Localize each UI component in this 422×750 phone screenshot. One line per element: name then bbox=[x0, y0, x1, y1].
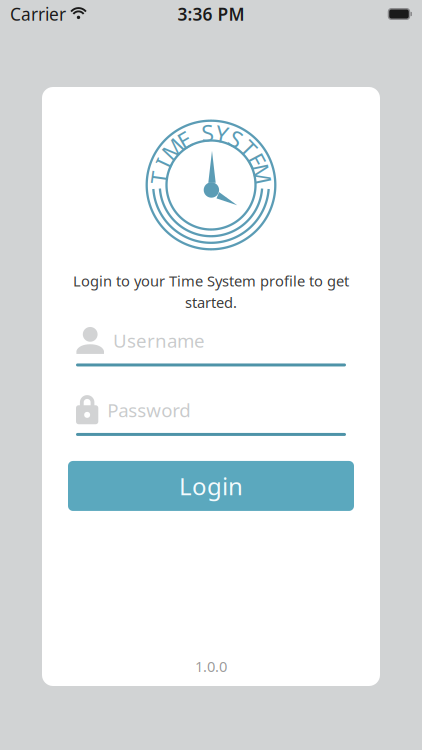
staticText: 1.0.0 bbox=[195, 656, 227, 676]
staticText: M bbox=[252, 159, 273, 189]
staticText: T bbox=[242, 133, 255, 164]
staticText: E bbox=[178, 124, 191, 155]
staticText: Y bbox=[215, 119, 228, 149]
staticText: Username bbox=[113, 328, 205, 353]
staticText: Login bbox=[179, 470, 243, 502]
staticText: Password bbox=[107, 398, 190, 422]
staticText: E bbox=[251, 145, 264, 175]
button[interactable]: Login bbox=[68, 461, 354, 511]
staticText: 3:36 PM bbox=[177, 2, 244, 25]
staticText: S bbox=[201, 118, 213, 148]
staticText: S bbox=[230, 124, 242, 154]
staticText: Login to your Time System profile to get bbox=[73, 271, 349, 290]
staticText: started. bbox=[185, 292, 237, 312]
staticText: T bbox=[152, 163, 165, 193]
staticText: I bbox=[159, 148, 167, 178]
staticText: M bbox=[162, 134, 183, 164]
staticText: Carrier bbox=[10, 2, 66, 25]
